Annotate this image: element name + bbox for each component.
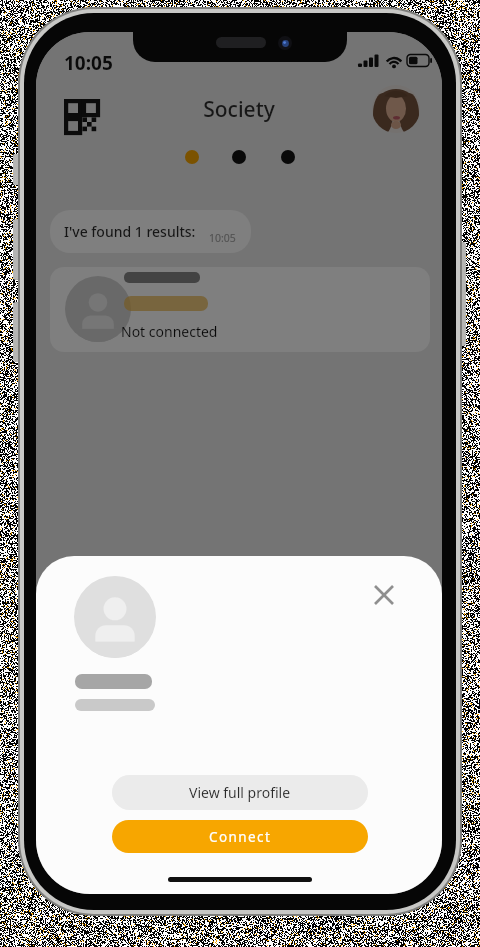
staticText: Society: [36, 95, 442, 124]
staticText: 10:05: [64, 50, 113, 76]
button[interactable]: [362, 573, 406, 617]
button[interactable]: View full profile: [112, 775, 368, 810]
staticText: Not connected: [121, 322, 218, 341]
button[interactable]: Not connected: [50, 267, 430, 352]
staticText: Connect: [209, 828, 272, 846]
staticText: View full profile: [189, 783, 291, 802]
button[interactable]: Connect: [112, 820, 368, 853]
staticText: 10:05: [209, 231, 236, 245]
button[interactable]: [372, 85, 420, 133]
staticText: I've found 1 results:: [64, 222, 196, 241]
button[interactable]: [58, 93, 102, 137]
